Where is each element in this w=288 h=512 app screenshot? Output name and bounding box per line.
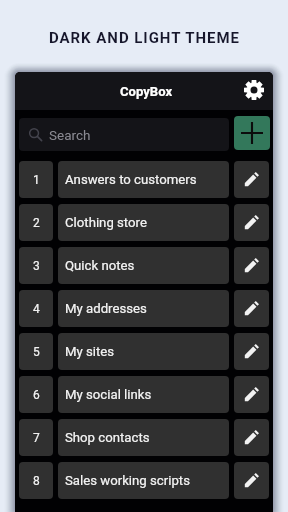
button[interactable]: Sales working scripts [58,462,229,499]
button[interactable]: My addresses [58,290,229,327]
button[interactable]: My sites [58,333,229,370]
staticText: 7 [33,431,40,445]
staticText: DARK AND LIGHT THEME [49,29,240,47]
button[interactable]: 6 [19,376,53,413]
button[interactable]: Clothing store [58,204,229,241]
staticText: CopyBox [120,84,173,99]
button[interactable]: Edit [234,419,269,456]
button[interactable]: Search [19,118,229,151]
staticText: My addresses [65,301,147,316]
staticText: Quick notes [65,258,135,273]
staticText: My sites [65,344,115,359]
button[interactable]: Edit [234,247,269,284]
staticText: Shop contacts [65,430,150,445]
button[interactable]: Shop contacts [58,419,229,456]
button[interactable]: 5 [19,333,53,370]
button[interactable]: Quick notes [58,247,229,284]
button[interactable]: Edit [234,462,269,499]
staticText: 3 [33,259,40,273]
button[interactable]: Answers to customers [58,161,229,198]
staticText: 6 [33,388,40,402]
staticText: 1 [33,173,40,187]
staticText: Search [49,127,91,143]
staticText: 2 [33,216,40,230]
button[interactable]: 2 [19,204,53,241]
button[interactable]: 7 [19,419,53,456]
button[interactable]: Edit [234,204,269,241]
staticText: Clothing store [65,215,147,230]
staticText: 8 [33,474,40,488]
button[interactable]: Add [234,116,270,150]
button[interactable]: Settings [241,77,267,103]
button[interactable]: Edit [234,290,269,327]
button[interactable]: Edit [234,376,269,413]
button[interactable]: 4 [19,290,53,327]
staticText: Answers to customers [65,172,197,187]
button[interactable]: Edit [234,161,269,198]
staticText: Sales working scripts [65,473,190,488]
button[interactable]: 3 [19,247,53,284]
staticText: 5 [33,345,40,359]
staticText: 4 [33,302,40,316]
button[interactable]: 8 [19,462,53,499]
button[interactable]: My social links [58,376,229,413]
button[interactable]: Edit [234,333,269,370]
button[interactable]: 1 [19,161,53,198]
staticText: My social links [65,387,152,402]
